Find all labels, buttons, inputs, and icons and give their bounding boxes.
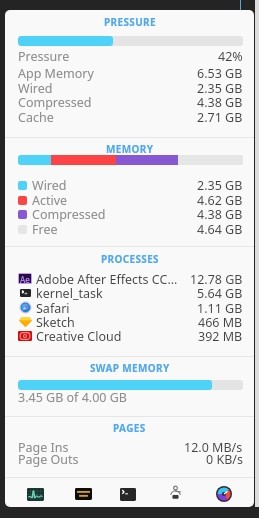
staticText: App Memory: [18, 65, 94, 82]
button[interactable]: Automator: [164, 483, 186, 505]
staticText: MEMORY: [106, 142, 154, 156]
staticText: Wired: [32, 177, 67, 194]
staticText: SWAP MEMORY: [90, 361, 170, 375]
staticText: PAGES: [113, 421, 146, 435]
staticText: 12.0 MB/s: [184, 439, 243, 456]
button[interactable]: App Memory: [5, 64, 254, 82]
staticText: 42%: [218, 48, 243, 65]
button[interactable]: Sketch: [5, 313, 254, 331]
button[interactable]: kernel_task: [5, 284, 254, 302]
staticText: PROCESSES: [101, 252, 159, 266]
staticText: 0 KB/s: [206, 451, 243, 468]
button[interactable]: Wired: [5, 176, 254, 194]
button[interactable]: Wired: [5, 79, 254, 97]
staticText: Active: [32, 192, 68, 209]
staticText: 4.64 GB: [197, 221, 243, 238]
staticText: Cache: [18, 109, 54, 126]
button[interactable]: Compressed: [5, 93, 254, 111]
staticText: 6.53 GB: [197, 65, 243, 82]
staticText: 392 MB: [198, 328, 243, 345]
staticText: 3.45 GB of 4.00 GB: [18, 389, 127, 406]
button[interactable]: Free: [5, 220, 254, 238]
staticText: 2.35 GB: [197, 177, 243, 194]
staticText: Free: [32, 221, 58, 238]
button[interactable]: Safari: [5, 299, 254, 317]
button[interactable]: Active: [5, 191, 254, 209]
button[interactable]: Terminal: [117, 483, 139, 505]
staticText: Compressed: [32, 206, 106, 223]
staticText: 4.62 GB: [197, 192, 243, 209]
staticText: Sketch: [36, 314, 75, 331]
button[interactable]: Warning: [72, 483, 94, 505]
button[interactable]: Creative Cloud: [5, 327, 254, 345]
staticText: 4.38 GB: [197, 206, 243, 223]
staticText: 4.38 GB: [197, 94, 243, 111]
button[interactable]: Activity Monitor: [24, 483, 46, 505]
staticText: Page Ins: [18, 439, 69, 456]
staticText: Compressed: [18, 94, 92, 111]
staticText: Adobe After Effects CC...: [36, 271, 178, 288]
button[interactable]: Disk Usage: [213, 483, 235, 505]
staticText: Creative Cloud: [36, 328, 122, 345]
staticText: 2.35 GB: [197, 80, 243, 97]
staticText: 1.11 GB: [197, 300, 243, 317]
button[interactable]: Ae: [5, 270, 254, 288]
button[interactable]: Compressed: [5, 205, 254, 223]
staticText: 2.71 GB: [197, 109, 243, 126]
button[interactable]: Pressure: [5, 47, 254, 65]
staticText: Ae: [20, 274, 30, 283]
staticText: Page Outs: [18, 451, 79, 468]
staticText: kernel_task: [36, 285, 103, 302]
staticText: 466 MB: [198, 314, 243, 331]
staticText: 5.64 GB: [197, 285, 243, 302]
button[interactable]: Cache: [5, 108, 254, 126]
button[interactable]: Page Ins: [5, 438, 254, 456]
staticText: 12.78 GB: [190, 271, 243, 288]
button[interactable]: Page Outs: [5, 450, 254, 468]
staticText: Wired: [18, 80, 53, 97]
staticText: PRESSURE: [104, 15, 156, 29]
staticText: Safari: [36, 300, 70, 317]
staticText: Pressure: [18, 48, 70, 65]
